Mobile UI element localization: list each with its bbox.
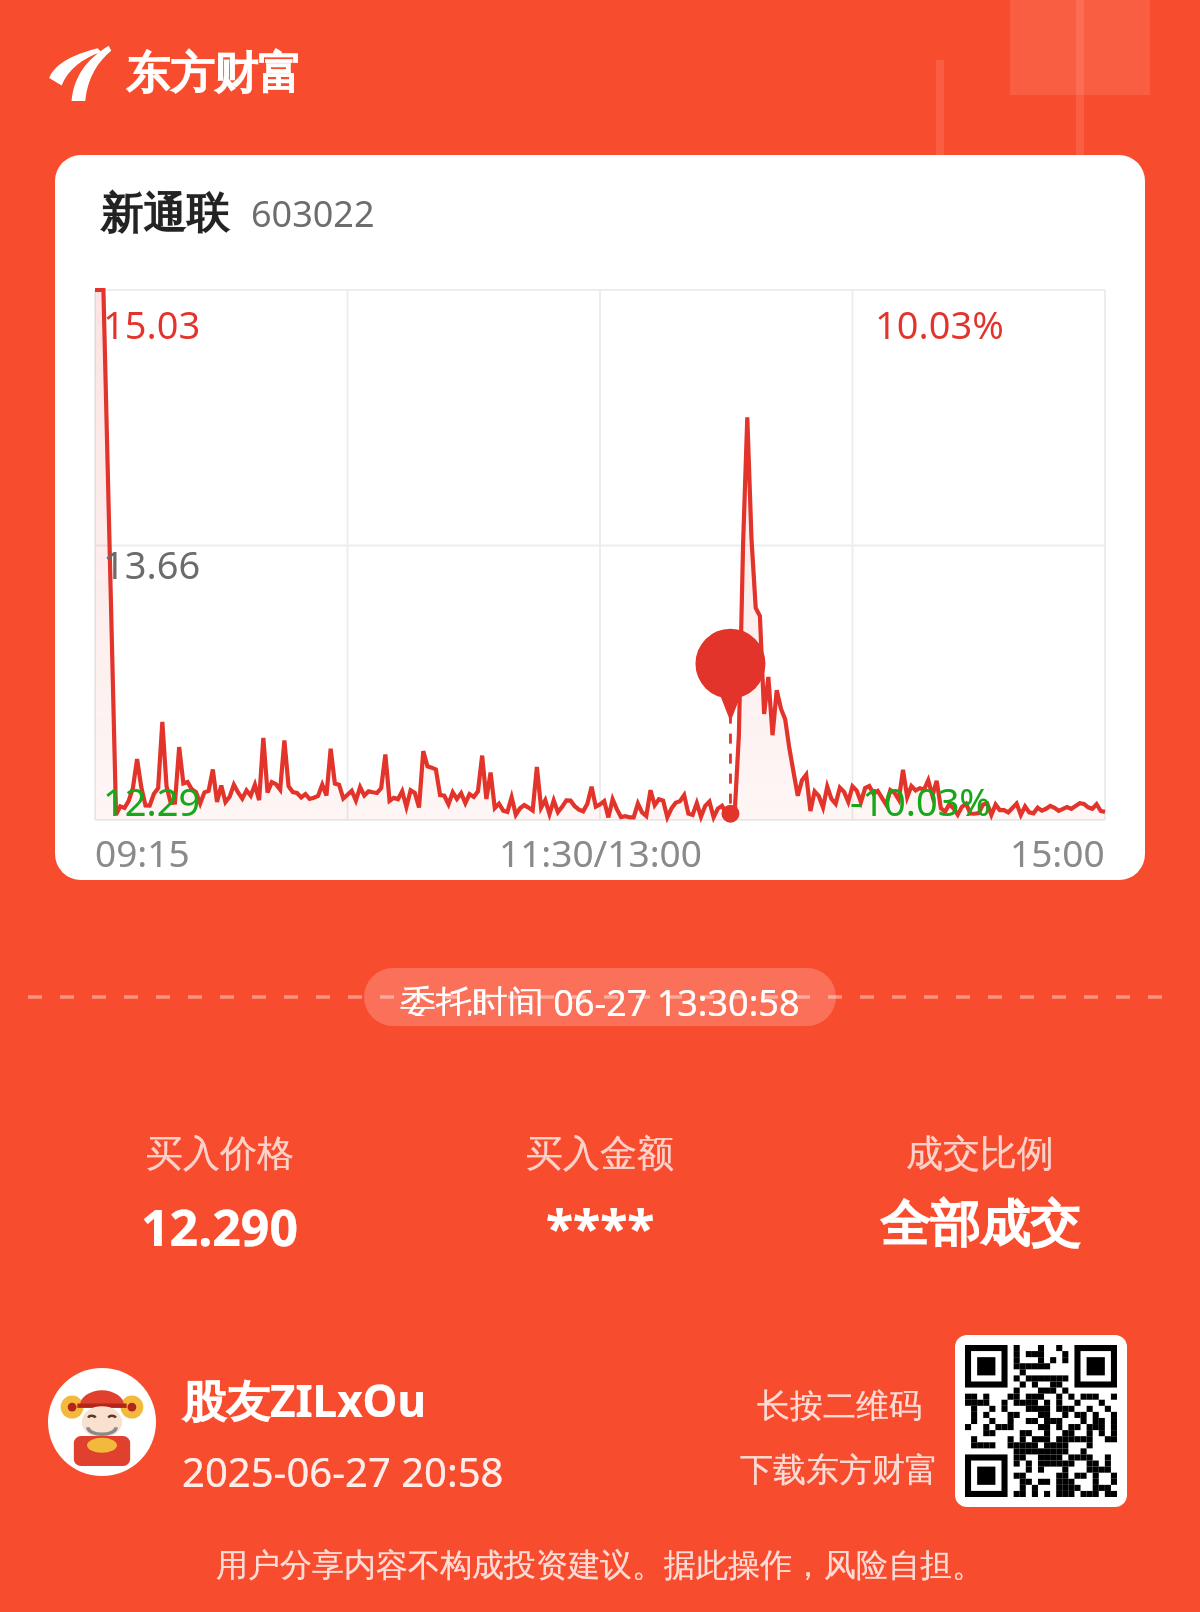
staticText: 委托时间 06-27 13:30:58 xyxy=(400,978,800,1016)
staticText: **** xyxy=(546,1193,655,1261)
staticText: 09:15 xyxy=(95,827,190,877)
staticText: 全部成交 xyxy=(880,1193,1080,1256)
button[interactable]: 用户头像 xyxy=(48,1368,156,1476)
staticText: 11:30/13:00 xyxy=(499,827,702,877)
staticText: -10.03% xyxy=(850,775,991,827)
button[interactable]: 东方财富 xyxy=(48,42,302,104)
staticText: 下载东方财富 xyxy=(740,1449,938,1491)
button[interactable]: 新通联 xyxy=(55,155,1145,880)
staticText: 新通联 xyxy=(100,187,229,241)
staticText: 603022 xyxy=(251,189,375,238)
staticText: 12.29 xyxy=(103,775,201,827)
staticText: 15:00 xyxy=(1010,827,1105,877)
staticText: 用户分享内容不构成投资建议。据此操作，风险自担。 xyxy=(0,1545,1200,1585)
button[interactable]: 成交比例 xyxy=(790,1130,1170,1256)
staticText: 买入金额 xyxy=(526,1130,674,1177)
staticText: 买入价格 xyxy=(146,1130,294,1177)
staticText: 东方财富 xyxy=(126,46,302,101)
staticText: 15.03 xyxy=(103,298,201,350)
button[interactable]: 买入金额 xyxy=(410,1130,790,1261)
staticText: 股友ZILxOu xyxy=(182,1370,427,1430)
staticText: 2025-06-27 20:58 xyxy=(182,1444,504,1498)
button[interactable]: 委托时间 06-27 13:30:58 xyxy=(364,968,836,1026)
staticText: 12.290 xyxy=(141,1193,299,1261)
staticText: 10.03% xyxy=(875,298,1004,350)
staticText: 13.66 xyxy=(103,538,201,590)
button[interactable]: 下载二维码 xyxy=(955,1335,1127,1507)
staticText: 成交比例 xyxy=(906,1130,1054,1177)
staticText: 长按二维码 xyxy=(757,1385,922,1427)
button[interactable]: 买入价格 xyxy=(30,1130,410,1261)
